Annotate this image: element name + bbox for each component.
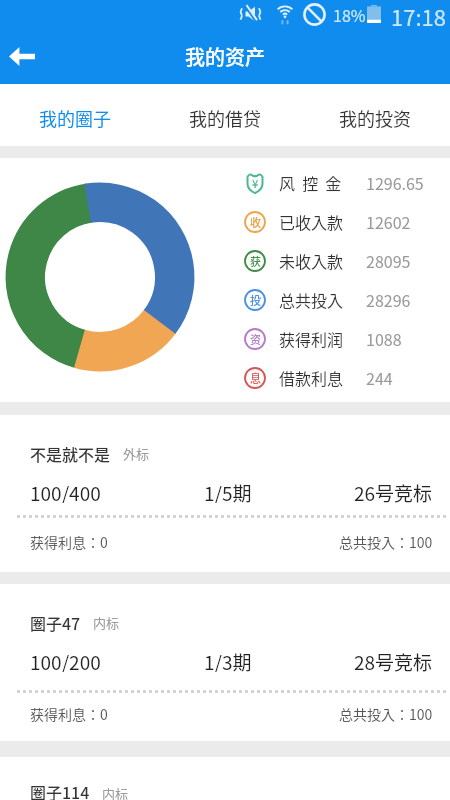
staticText: 我的投资: [339, 105, 411, 131]
staticText: 我的资产: [185, 42, 265, 71]
staticText: 圈子47: [30, 611, 81, 634]
staticText: 风 控 金: [279, 171, 366, 194]
staticText: 100/400: [30, 479, 101, 503]
staticText: ¥: [252, 175, 259, 191]
staticText: 1/3期: [204, 648, 252, 672]
staticText: 我的圈子: [39, 105, 111, 131]
staticText: 总共投入: [279, 288, 366, 311]
staticText: 获得利润: [279, 327, 366, 350]
staticText: 26号竞标: [354, 479, 433, 503]
staticText: 100/200: [30, 648, 101, 672]
button[interactable]: 我的投资: [300, 89, 450, 146]
button[interactable]: 我的圈子: [0, 89, 150, 146]
staticText: 借款利息: [279, 366, 366, 389]
staticText: 1296.65: [366, 171, 424, 194]
button[interactable]: 不是就不是: [0, 415, 450, 572]
staticText: 17:18: [391, 0, 446, 28]
button[interactable]: 圈子114: [30, 757, 450, 800]
staticText: 总共投入：100: [339, 532, 433, 552]
staticText: 投: [250, 292, 261, 308]
staticText: 1088: [366, 327, 402, 350]
staticText: 资: [250, 331, 261, 347]
staticText: 不是就不是: [30, 442, 111, 465]
staticText: 外标: [123, 444, 150, 463]
button[interactable]: 我的借贷: [150, 89, 300, 146]
button[interactable]: [0, 28, 56, 84]
staticText: 244: [366, 366, 393, 389]
staticText: 12602: [366, 210, 411, 233]
staticText: 未收入款: [279, 249, 366, 272]
staticText: 获得利息：0: [30, 704, 108, 724]
button[interactable]: 圈子47: [0, 584, 450, 741]
staticText: 已收入款: [279, 210, 366, 233]
staticText: 内标: [102, 784, 129, 800]
staticText: 总共投入：100: [339, 704, 433, 724]
staticText: 1/5期: [204, 479, 252, 503]
staticText: 息: [250, 370, 261, 386]
staticText: 我的借贷: [189, 105, 261, 131]
staticText: 收: [250, 214, 261, 230]
staticText: 28296: [366, 288, 411, 311]
staticText: 28095: [366, 249, 411, 272]
staticText: 圈子114: [30, 780, 90, 800]
staticText: 获: [250, 253, 261, 269]
staticText: 内标: [93, 613, 120, 632]
staticText: 获得利息：0: [30, 532, 108, 552]
staticText: 28号竞标: [354, 648, 433, 672]
staticText: 18%: [333, 3, 366, 26]
